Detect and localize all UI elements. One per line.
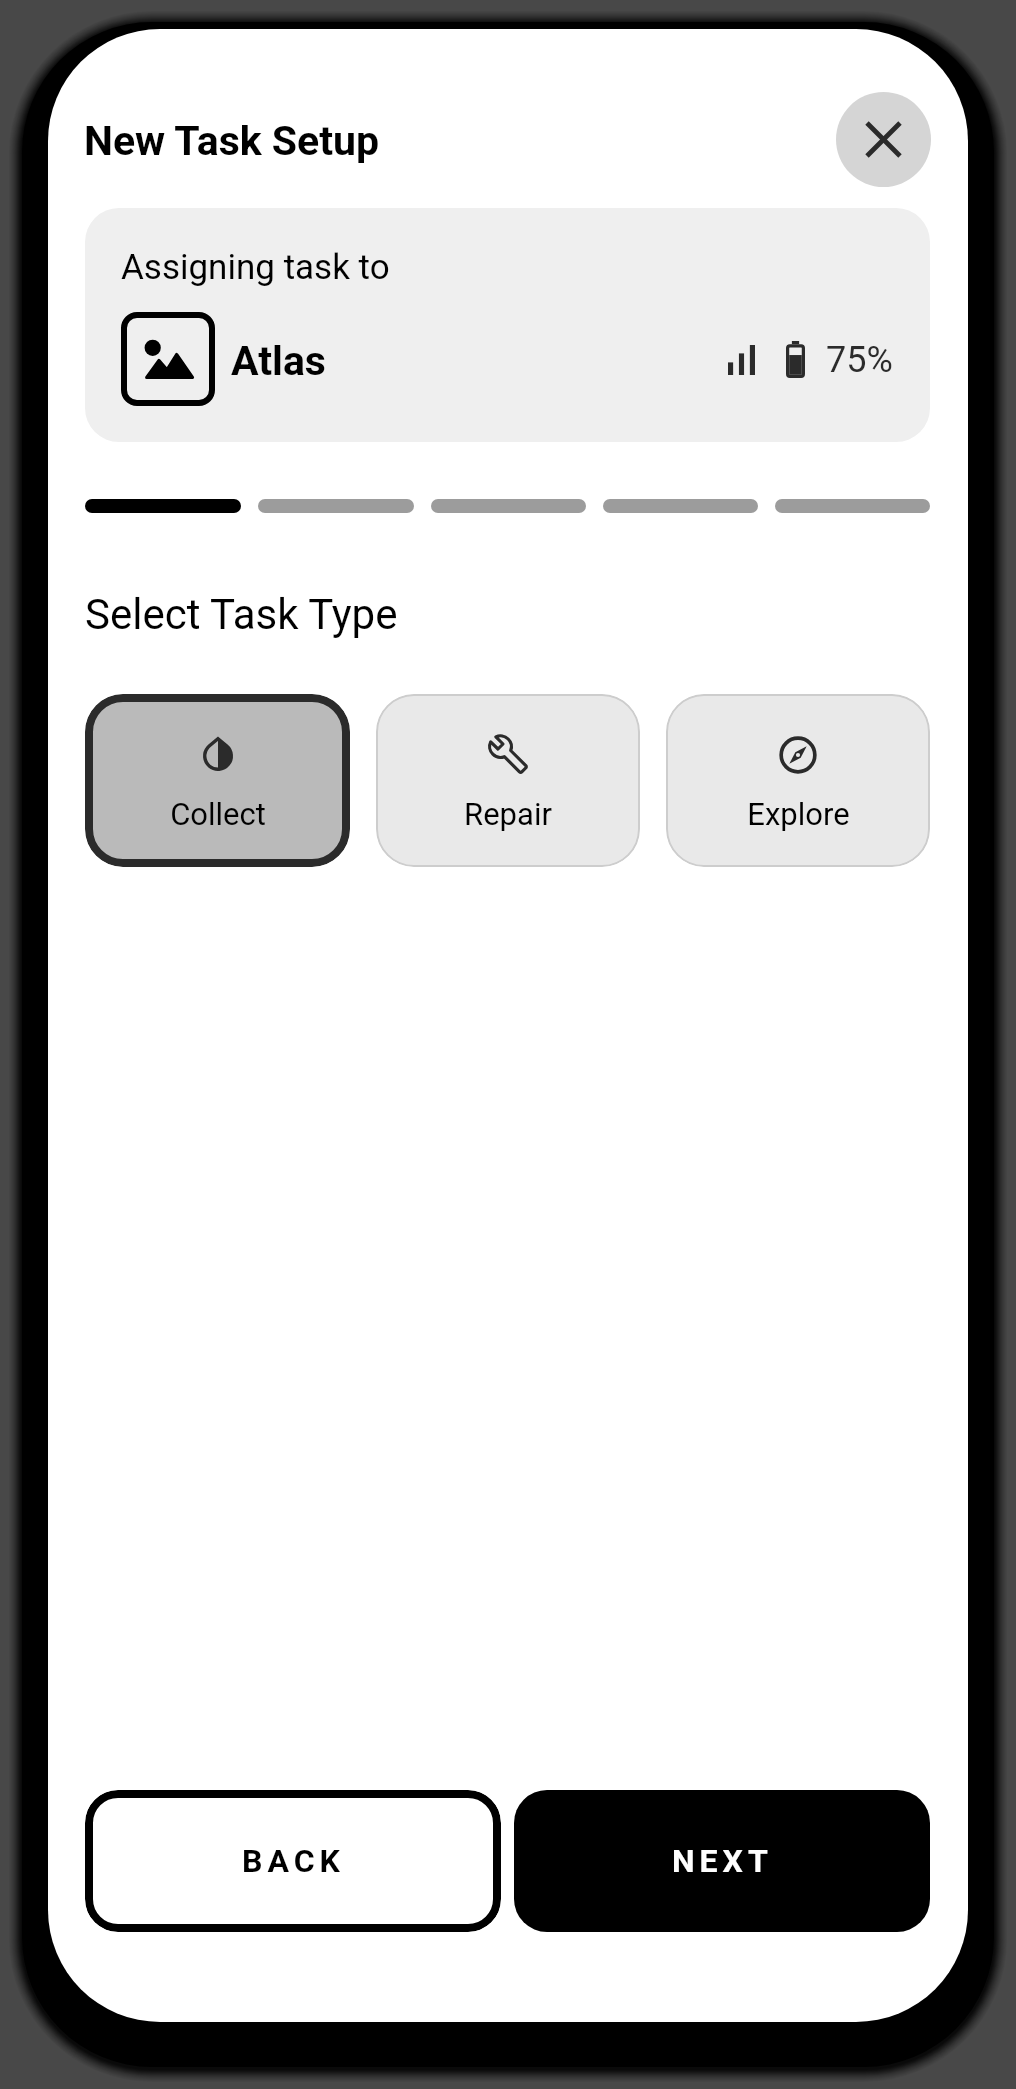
staticText: NEXT — [672, 1842, 773, 1880]
staticText: Explore — [747, 796, 850, 832]
button[interactable]: BACK — [85, 1790, 501, 1932]
staticText: New Task Setup — [84, 117, 380, 165]
button[interactable]: Collect — [85, 694, 350, 867]
button[interactable]: Repair — [376, 694, 640, 867]
staticText: Select Task Type — [85, 590, 398, 639]
staticText: BACK — [242, 1842, 345, 1880]
button[interactable]: Close — [836, 92, 931, 187]
button[interactable]: Explore — [666, 694, 930, 867]
staticText: Repair — [464, 796, 552, 832]
button[interactable]: NEXT — [514, 1790, 930, 1932]
staticText: Atlas — [231, 337, 326, 385]
staticText: Assigning task to — [121, 247, 390, 288]
staticText: 75% — [826, 339, 893, 381]
staticText: Collect — [170, 796, 266, 832]
